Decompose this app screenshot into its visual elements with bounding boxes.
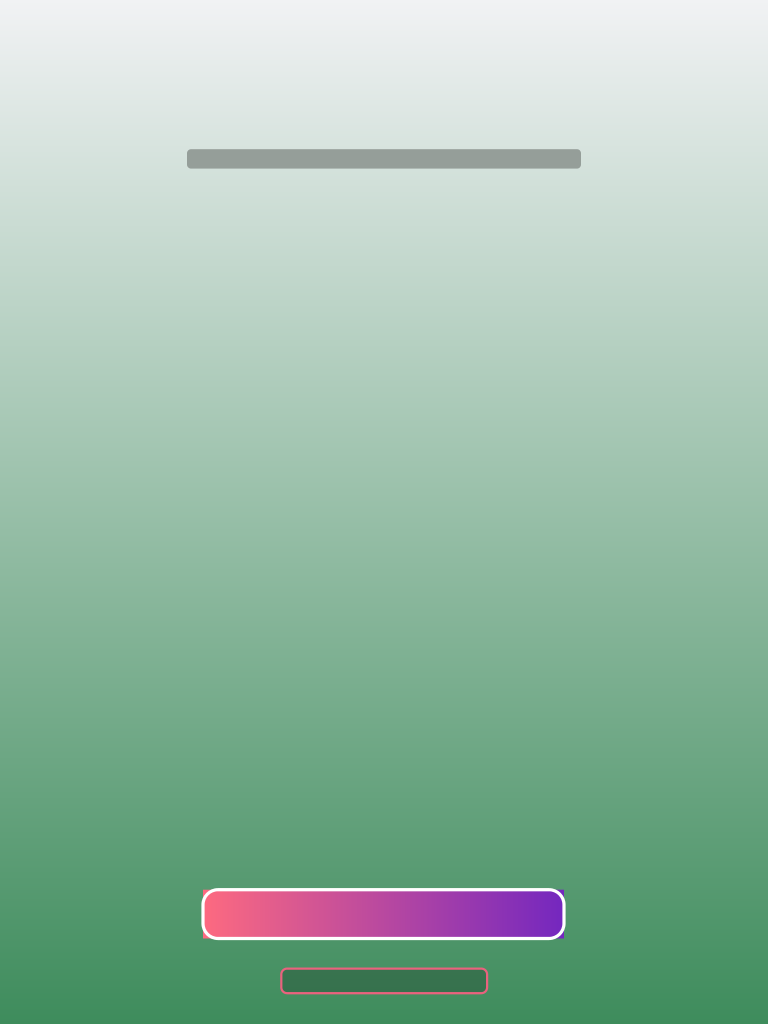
button[interactable]: Maybe later: [281, 969, 487, 993]
button[interactable]: Continue: [203, 890, 564, 938]
